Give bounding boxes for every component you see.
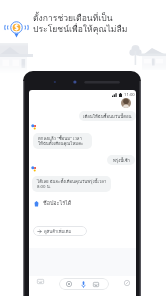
staticText: ช้อปอะไรได้ <box>43 199 72 208</box>
button[interactable]: ดูสินค้าเพิ่มเติม <box>33 226 87 236</box>
staticText: เตือนให้ฉันซื้อนมวันนี้ตอน <box>83 113 132 120</box>
button[interactable]: ตกลงแล้ว "ซื้อนม" เวลา ให้ฉันตั้งเตือนคุ… <box>33 133 92 149</box>
button[interactable]: ได้เลย ฉันจะตั้งเตือนคุณวันพรุ่งนี้เวลา … <box>32 176 111 192</box>
button[interactable]: Profile <box>122 278 132 288</box>
button[interactable]: Account <box>121 98 131 108</box>
staticText: ตั้งการช่วยเตือนที่เป็น ประโยชน์เพื่อให้… <box>33 11 128 36</box>
button[interactable]: Microphone <box>79 280 87 288</box>
button[interactable]: Google Lens <box>65 280 73 288</box>
staticText: ได้เลย ฉันจะตั้งเตือนคุณวันพรุ่งนี้เวลา … <box>37 178 107 190</box>
button[interactable]: Explore <box>35 276 45 286</box>
staticText: ตกลงแล้ว "ซื้อนม" เวลา ให้ฉันตั้งเตือนคุ… <box>38 135 84 147</box>
staticText: พรุ่งนี้เช้า <box>113 157 130 164</box>
staticText: ดูสินค้าเพิ่มเติม <box>44 228 72 235</box>
button[interactable]: พรุ่งนี้เช้า <box>107 155 135 165</box>
staticText: 11:00 <box>124 92 135 98</box>
button[interactable]: เตือนให้ฉันซื้อนมวันนี้ตอน <box>79 111 136 121</box>
button[interactable]: ช้อปอะไรได้ <box>33 199 72 208</box>
button[interactable]: Keyboard <box>92 280 100 288</box>
